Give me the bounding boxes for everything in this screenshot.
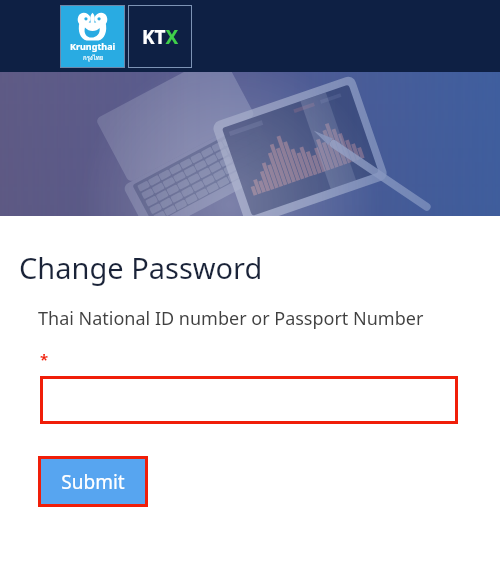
button[interactable]: Thai National ID number or Passport Numb… — [40, 376, 458, 424]
staticText: กรุงไทย — [83, 53, 104, 63]
staticText: * — [40, 349, 49, 369]
button[interactable]: KTX logo — [128, 5, 192, 68]
button[interactable]: Krungthai Bank logo — [60, 5, 125, 68]
staticText: Change Password — [19, 248, 263, 287]
button[interactable]: Submit — [41, 459, 145, 504]
staticText: Submit — [61, 469, 125, 495]
staticText: Thai National ID number or Passport Numb… — [38, 306, 424, 331]
staticText: Krungthai — [70, 40, 116, 52]
staticText: KTX — [142, 24, 179, 50]
